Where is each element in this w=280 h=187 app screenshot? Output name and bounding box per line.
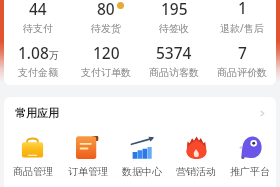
staticText: 1.08万 — [18, 42, 59, 63]
staticText: 常用应用 — [15, 106, 59, 120]
button[interactable]: 常用应用 — [4, 97, 276, 129]
staticText: 营销活动 — [176, 165, 216, 178]
staticText: 待签收 — [159, 22, 189, 35]
button[interactable]: 营销活动 — [169, 129, 223, 178]
staticText: 支付订单数 — [81, 66, 131, 79]
staticText: 推广平台 — [230, 165, 270, 178]
staticText: 商品评价数 — [217, 66, 267, 79]
staticText: 支付金额 — [18, 66, 58, 79]
staticText: 80 — [97, 0, 115, 19]
button[interactable]: 商品管理 — [5, 129, 60, 178]
staticText: 订单管理 — [68, 165, 108, 178]
button[interactable]: 195 — [140, 0, 208, 38]
button[interactable]: 5374 — [140, 38, 208, 82]
staticText: 待支付 — [23, 22, 53, 35]
staticText: 商品管理 — [13, 165, 53, 178]
staticText: 195 — [161, 0, 188, 19]
button[interactable]: 订单管理 — [60, 129, 115, 178]
button[interactable]: 数据中心 — [115, 129, 169, 178]
button[interactable]: 7 — [208, 38, 276, 82]
button[interactable]: 44 — [4, 0, 72, 38]
staticText: 待发货 — [91, 22, 121, 35]
staticText: 120 — [93, 42, 120, 63]
button[interactable]: 1 — [208, 0, 276, 38]
staticText: 1 — [238, 0, 247, 18]
button[interactable]: 1.08万 — [4, 38, 72, 82]
button[interactable]: 80 — [72, 0, 140, 38]
button[interactable]: 120 — [72, 38, 140, 82]
staticText: 44 — [29, 0, 47, 19]
button[interactable]: 推广平台 — [223, 129, 276, 178]
staticText: 7 — [238, 42, 247, 63]
staticText: 数据中心 — [122, 165, 162, 178]
staticText: 商品访客数 — [149, 66, 199, 79]
staticText: 退款/售后 — [220, 21, 264, 35]
staticText: 5374 — [156, 42, 192, 63]
